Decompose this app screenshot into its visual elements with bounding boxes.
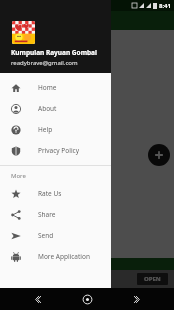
button[interactable]: Add <box>148 144 170 166</box>
staticText: readybrave@gmail.com <box>11 59 78 67</box>
staticText: Send <box>38 231 54 240</box>
staticText: Privacy Policy <box>38 146 80 155</box>
button[interactable]: Help <box>0 119 111 140</box>
staticText: deh om. Manisnya... begitu juga <box>6 126 82 133</box>
staticText: Help <box>38 125 53 134</box>
button[interactable]: Send <box>0 225 111 246</box>
staticText: ku lah yang selalu ada untukmu dan <box>6 108 92 115</box>
button[interactable]: About <box>0 98 111 119</box>
button[interactable]: Recents <box>124 288 150 310</box>
staticText: Antara, ESPN, kamu yang selalu <box>6 153 81 160</box>
staticText: Kumpulan Rayuan Gombal <box>11 48 97 57</box>
staticText: Home <box>38 83 57 92</box>
button[interactable]: Privacy Policy <box>0 140 111 161</box>
button[interactable]: Home <box>0 77 111 98</box>
staticText: pada kesempatan kali ini saya akan <box>6 90 89 97</box>
staticText: 8:41 <box>159 2 171 10</box>
button[interactable]: Share <box>0 204 111 225</box>
button[interactable]: More Application <box>0 246 111 267</box>
staticText: OPEN <box>144 275 161 283</box>
staticText: g, takut dianggap gk sopan. Terpaksa <box>6 63 94 70</box>
staticText: deh om. Manisnya... begitu juga <box>6 72 82 79</box>
staticText: More Application <box>38 252 90 261</box>
staticText: Share <box>38 210 56 219</box>
button[interactable]: OPEN <box>137 273 168 285</box>
button[interactable]: Home <box>74 288 100 310</box>
staticText: pada kesempatan kali ini saya akan <box>6 144 89 151</box>
staticText: pada kesempatan kali ini saya akan <box>6 36 89 43</box>
staticText: More <box>11 172 26 180</box>
button[interactable]: Back <box>24 288 50 310</box>
staticText: Rate Us <box>38 189 62 198</box>
staticText: About <box>38 104 57 113</box>
staticText: Antara, ESPN, kamu yang selalu <box>6 99 81 106</box>
staticText: ku lah yang selalu ada untukmu dan <box>6 54 92 61</box>
button[interactable]: Rate Us <box>0 183 111 204</box>
staticText: Antara, ESPN, kamu yang selalu <box>6 45 81 52</box>
staticText: ngat sulit fang rata-rata orang <box>6 81 77 88</box>
